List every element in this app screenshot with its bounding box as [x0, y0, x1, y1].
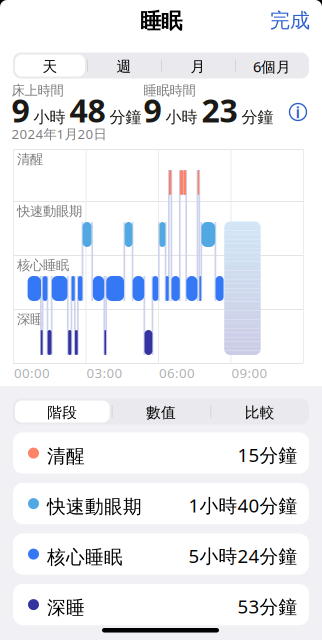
staticText: 1小時40分鐘: [188, 493, 297, 518]
staticText: 48: [69, 89, 105, 131]
staticText: 完成: [270, 8, 310, 33]
staticText: 9: [143, 89, 161, 131]
staticText: 快速動眼期: [17, 203, 82, 219]
button[interactable]: 月: [0, 0, 200, 16]
staticText: 6個月: [253, 57, 291, 76]
button[interactable]: 快速動眼期: [0, 0, 296, 41]
button[interactable]: 比較: [0, 0, 200, 16]
button[interactable]: 階段: [0, 0, 200, 16]
button[interactable]: 深睡: [0, 0, 296, 41]
staticText: 睡眠: [140, 8, 182, 34]
staticText: 週: [116, 57, 131, 75]
button[interactable]: 數值: [0, 0, 200, 16]
staticText: 深睡: [17, 311, 43, 327]
staticText: 分鐘: [109, 107, 141, 127]
staticText: 5小時24分鐘: [188, 543, 297, 568]
button[interactable]: 更多資訊: [0, 0, 20, 20]
staticText: 23: [201, 89, 237, 131]
staticText: 小時: [33, 107, 65, 127]
button[interactable]: 6個月: [0, 0, 200, 16]
staticText: i: [295, 101, 300, 123]
staticText: 9: [11, 89, 29, 131]
button[interactable]: 週: [0, 0, 200, 16]
staticText: 天: [42, 57, 57, 75]
staticText: 核心睡眠: [47, 546, 123, 569]
staticText: 00:00: [14, 364, 50, 382]
staticText: 03:00: [86, 364, 122, 382]
staticText: 清醒: [47, 445, 85, 468]
staticText: 核心睡眠: [17, 257, 69, 273]
staticText: 床上時間: [11, 82, 63, 99]
button[interactable]: 清醒: [0, 0, 296, 41]
staticText: 15分鐘: [237, 442, 297, 467]
staticText: 深睡: [47, 596, 85, 619]
staticText: 小時: [165, 107, 197, 127]
staticText: 分鐘: [241, 107, 273, 127]
button[interactable]: 核心睡眠: [0, 0, 296, 41]
staticText: 睡眠時間: [143, 82, 195, 99]
staticText: 階段: [47, 403, 77, 421]
staticText: 09:00: [231, 364, 267, 382]
staticText: 比較: [245, 403, 275, 421]
staticText: 快速動眼期: [47, 495, 142, 518]
staticText: 數值: [146, 403, 176, 421]
staticText: 53分鐘: [237, 594, 297, 619]
button[interactable]: 天: [0, 0, 200, 16]
staticText: 06:00: [159, 364, 195, 382]
button[interactable]: 完成: [0, 0, 200, 21]
staticText: 2024年1月20日: [11, 125, 106, 143]
staticText: 清醒: [17, 151, 43, 167]
staticText: 月: [190, 57, 205, 75]
